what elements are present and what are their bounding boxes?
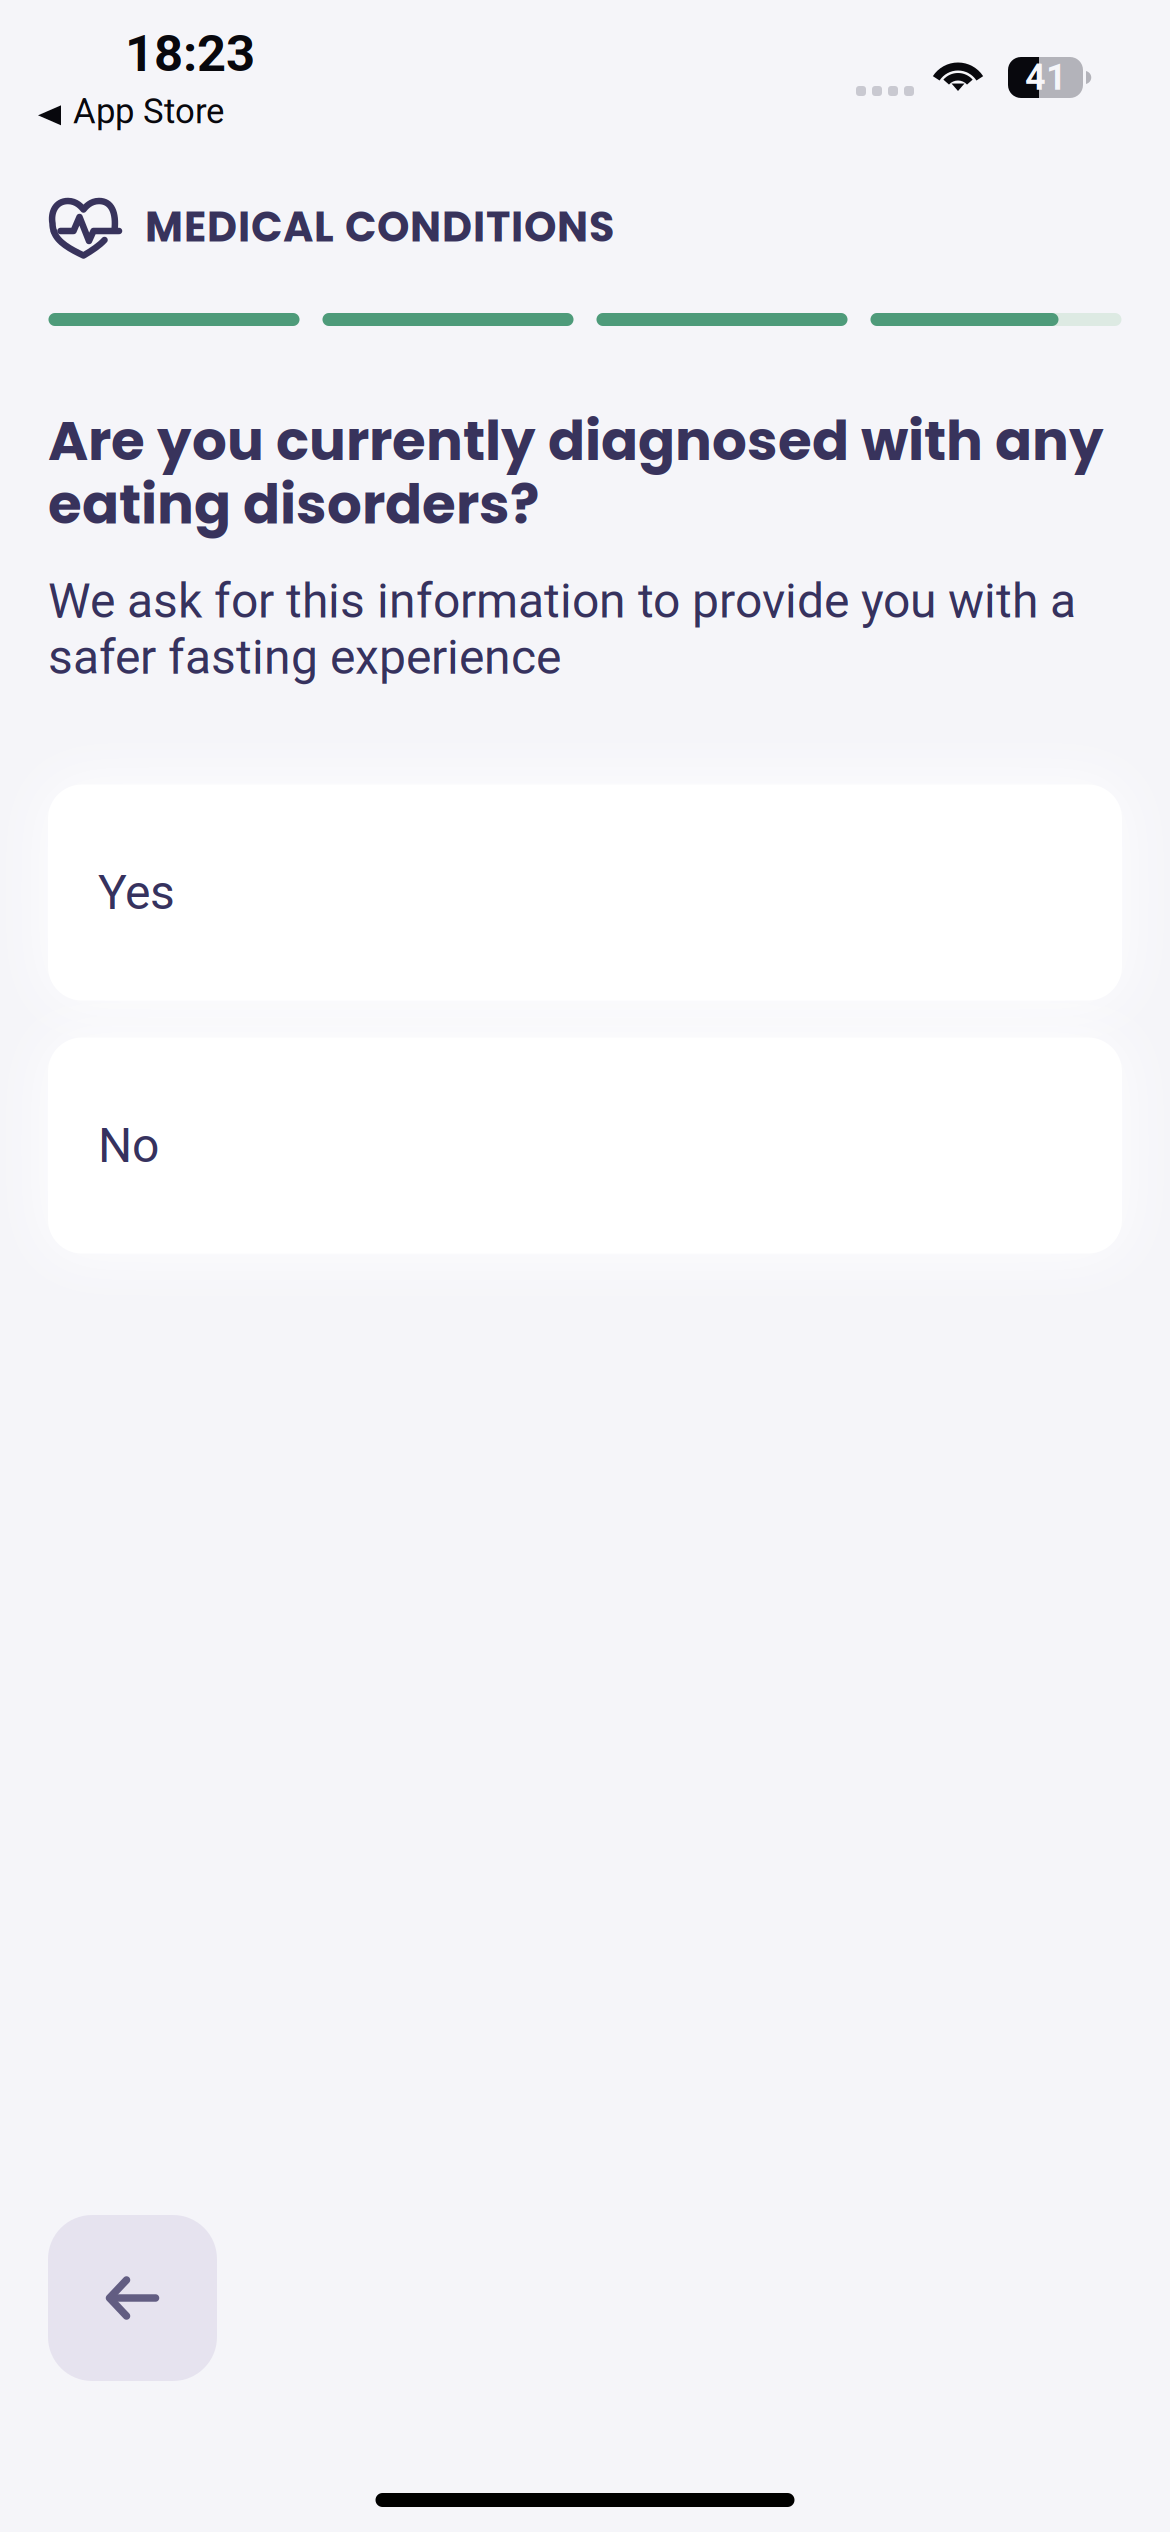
button[interactable]: Yes bbox=[48, 784, 1122, 1000]
staticText: We ask for this information to provide y… bbox=[48, 573, 1076, 685]
staticText: 41 bbox=[1025, 56, 1067, 99]
staticText: MEDICAL CONDITIONS bbox=[145, 198, 614, 256]
staticText: Are you currently diagnosed with any eat… bbox=[48, 409, 1104, 536]
staticText: 18:23 bbox=[125, 24, 255, 83]
button[interactable]: Back bbox=[48, 2215, 217, 2381]
button[interactable]: No bbox=[48, 1037, 1122, 1253]
staticText: No bbox=[98, 1117, 159, 1174]
staticText: App Store bbox=[73, 91, 224, 132]
staticText: Yes bbox=[98, 864, 175, 921]
